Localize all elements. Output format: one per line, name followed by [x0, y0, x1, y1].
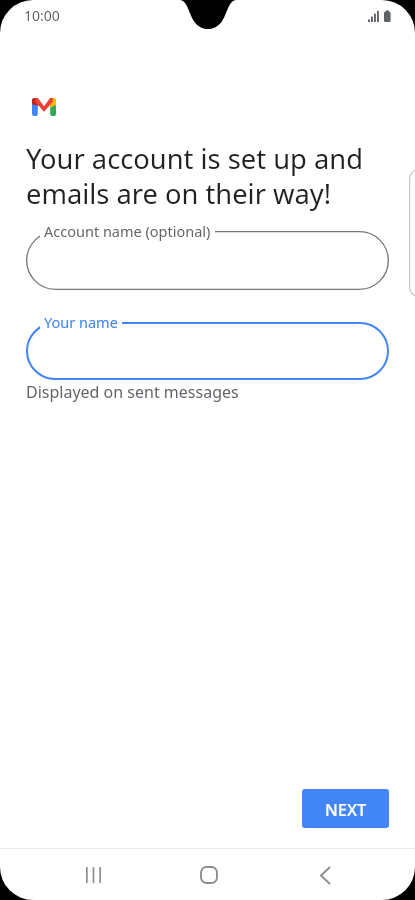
- staticText: 10:00: [24, 6, 60, 25]
- button[interactable]: Account name (optional): [26, 231, 389, 290]
- staticText: Your account is set up and emails are on…: [26, 140, 363, 212]
- button[interactable]: Home: [185, 851, 233, 899]
- button[interactable]: NEXT: [302, 789, 389, 828]
- staticText: Your name: [44, 312, 118, 332]
- button[interactable]: Back: [301, 851, 349, 899]
- button[interactable]: Your name: [26, 322, 389, 380]
- staticText: Displayed on sent messages: [26, 381, 239, 403]
- staticText: NEXT: [325, 798, 367, 820]
- staticText: Account name (optional): [44, 221, 211, 241]
- button[interactable]: Recent apps: [69, 851, 117, 899]
